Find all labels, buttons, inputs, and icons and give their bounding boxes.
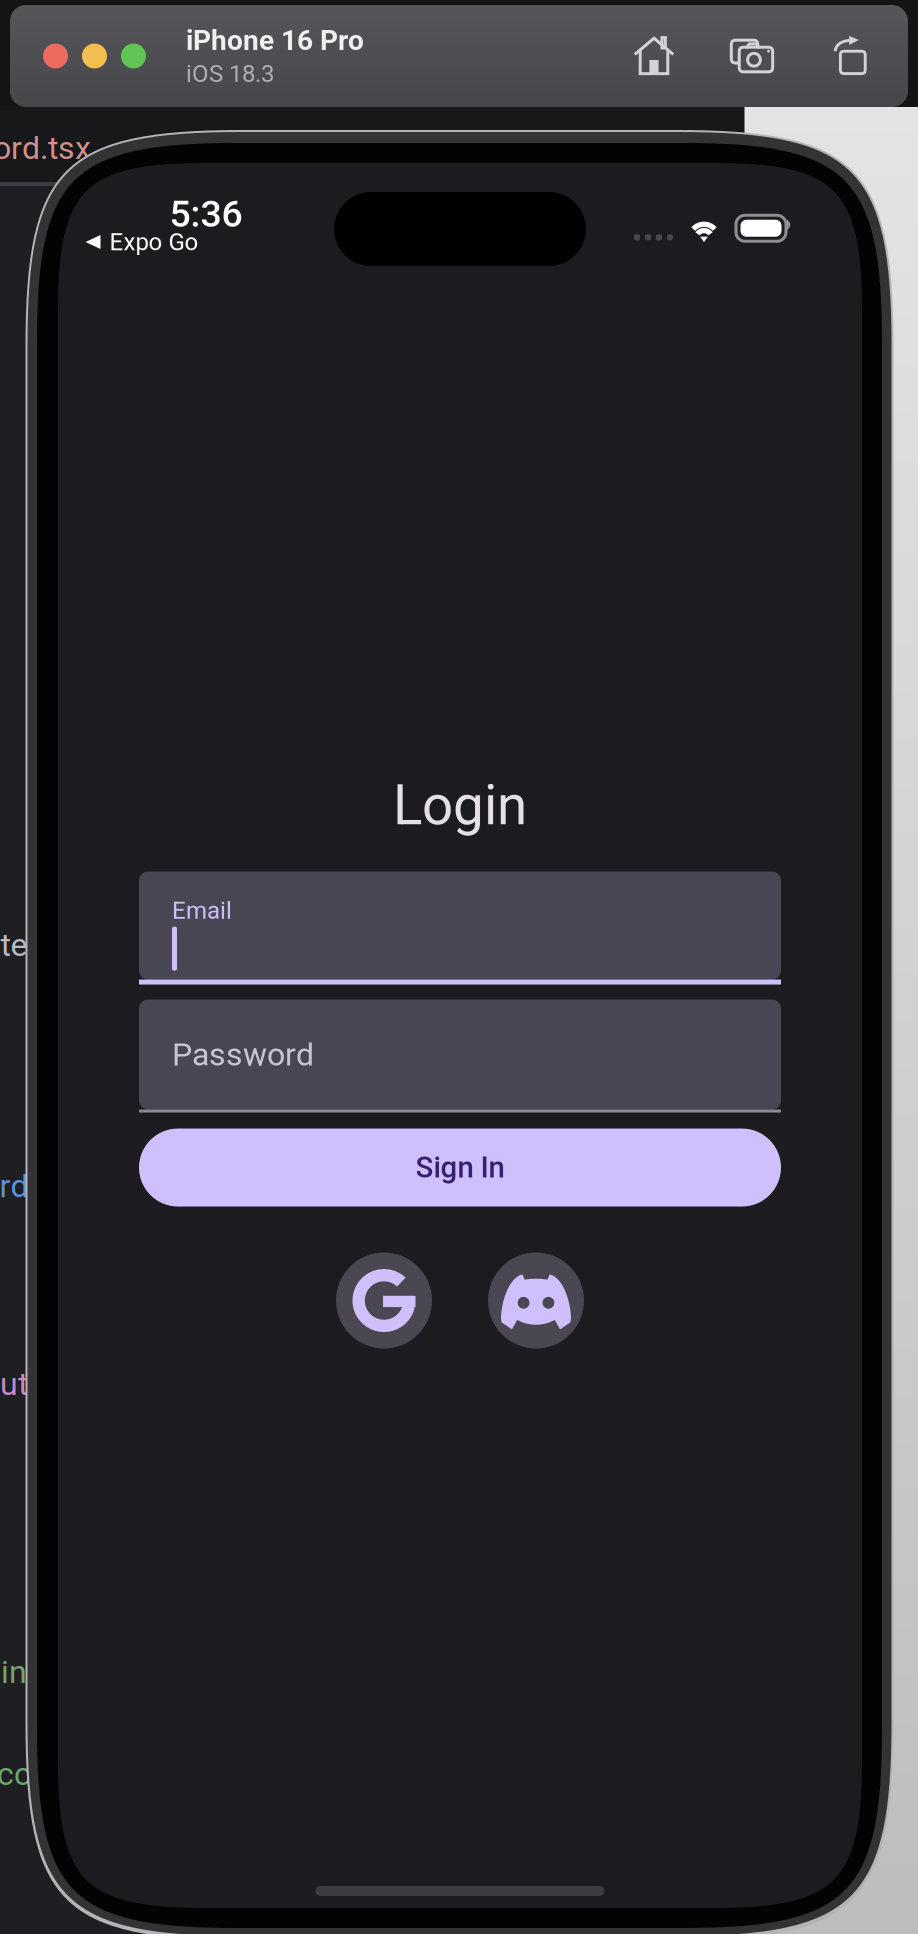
staticText: ut [0,1365,28,1403]
button[interactable]: Sign in with Discord [488,1252,584,1348]
staticText: Sign In [415,1150,504,1185]
staticText: Expo Go [109,228,198,256]
button[interactable]: Close window [43,43,68,68]
staticText: 5:36 [169,192,242,236]
staticText: word.tsx [0,129,91,167]
button[interactable]: Minimise window [82,43,107,68]
staticText: iOS 18.3 [186,60,274,88]
staticText: in [1,1653,27,1691]
staticText: Email [172,896,232,925]
button[interactable]: Sign In [139,1128,781,1206]
staticText: rd [0,1167,28,1205]
button[interactable]: Home [634,36,674,76]
button[interactable]: Zoom window [121,43,146,68]
staticText: te [0,926,27,964]
button[interactable]: Sign in with Google [336,1252,432,1348]
staticText: cc [0,1755,31,1793]
button[interactable]: Share [830,36,870,76]
staticText: Password [172,1036,314,1073]
button[interactable]: Screenshot [730,34,774,78]
staticText: Login [393,773,527,838]
button[interactable]: Email [139,871,781,984]
button[interactable]: Password [139,999,781,1112]
staticText: iPhone 16 Pro [186,24,364,57]
